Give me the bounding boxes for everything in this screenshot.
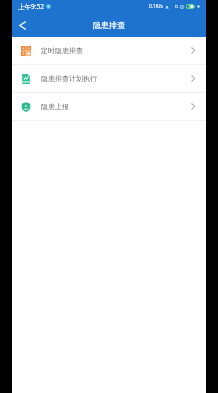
staticText: 隐患排查计划执行 bbox=[41, 74, 97, 83]
staticText: 隐患排查 bbox=[93, 20, 125, 30]
button[interactable]: 隐患排查计划执行 bbox=[12, 65, 206, 92]
staticText: 隐患上报 bbox=[41, 102, 69, 111]
button[interactable]: 隐患上报 bbox=[12, 93, 206, 120]
staticText: 定时隐患排查 bbox=[41, 46, 83, 55]
staticText: 0.1K/s bbox=[149, 3, 163, 10]
button[interactable]: Back bbox=[12, 13, 34, 37]
button[interactable]: 定时隐患排查 bbox=[12, 37, 206, 64]
staticText: 上午9:52 bbox=[18, 2, 44, 11]
